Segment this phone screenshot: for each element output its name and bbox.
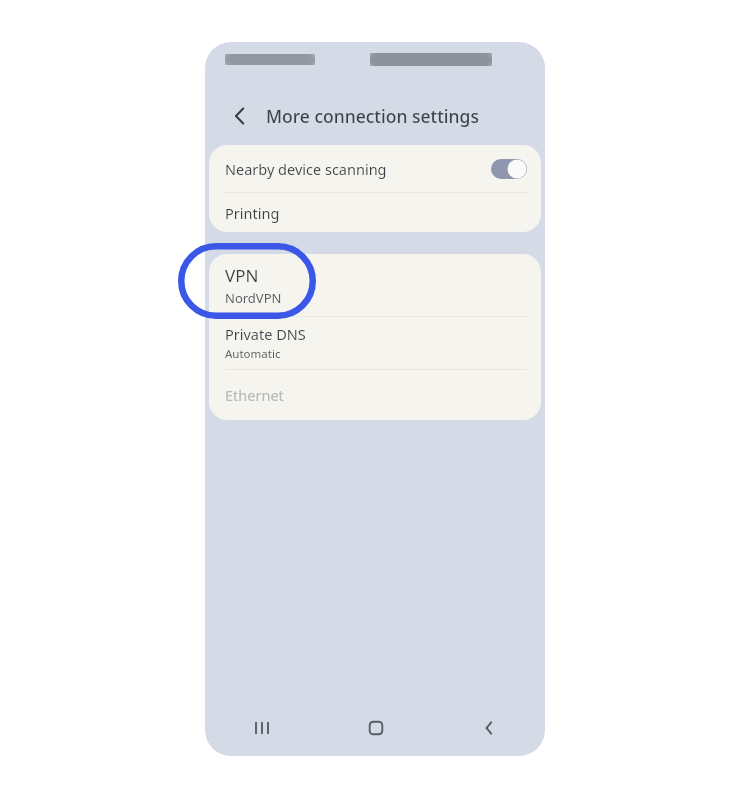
button[interactable]: VPN — [209, 254, 541, 316]
button[interactable]: Printing — [209, 193, 541, 232]
staticText: NordVPN — [225, 289, 282, 307]
staticText: More connection settings — [266, 104, 479, 128]
button[interactable]: Ethernet — [209, 370, 541, 420]
staticText: Printing — [225, 203, 280, 223]
staticText: Ethernet — [225, 385, 284, 405]
button[interactable]: Private DNS — [209, 317, 541, 369]
button[interactable]: Home — [319, 700, 432, 756]
staticText: VPN — [225, 264, 259, 287]
staticText: Private DNS — [225, 324, 306, 344]
button[interactable]: Recents — [205, 700, 319, 756]
button[interactable]: Back — [223, 99, 257, 133]
button[interactable]: Back — [432, 700, 545, 756]
button[interactable]: Nearby device scanning — [209, 145, 541, 192]
staticText: Automatic — [225, 346, 281, 362]
button[interactable]: Nearby device scanning toggle — [491, 159, 527, 179]
staticText: Nearby device scanning — [225, 159, 387, 179]
